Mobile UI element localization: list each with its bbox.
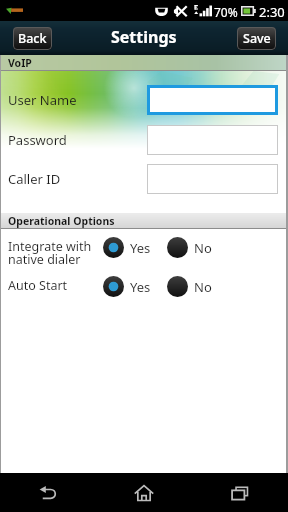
staticText: No [194, 278, 212, 296]
staticText: Save [243, 30, 271, 47]
button[interactable]: Yes [103, 276, 151, 297]
button[interactable]: Back [13, 27, 52, 50]
button[interactable]: Home [121, 473, 167, 512]
staticText: Settings [111, 26, 177, 48]
button[interactable]: No [167, 276, 212, 297]
button[interactable]: Yes [103, 237, 151, 258]
staticText: Password [8, 131, 67, 149]
button[interactable] [147, 164, 278, 194]
button[interactable] [147, 125, 278, 155]
staticText: No [194, 239, 212, 257]
staticText: 2:30 [259, 3, 285, 21]
button[interactable] [147, 85, 278, 115]
staticText: User Name [8, 91, 77, 109]
staticText: Yes [130, 278, 151, 296]
staticText: Integrate with native dialer [8, 238, 92, 267]
button[interactable]: No [167, 237, 212, 258]
button[interactable]: Recent apps [217, 473, 263, 512]
staticText: Caller ID [8, 170, 61, 188]
staticText: Operational Options [8, 214, 115, 228]
staticText: VoIP [8, 56, 32, 70]
button[interactable]: Back [25, 473, 71, 512]
button[interactable]: Save [237, 27, 276, 50]
staticText: Auto Start [8, 277, 68, 294]
staticText: 70% [214, 4, 238, 20]
staticText: Yes [130, 239, 151, 257]
staticText: Back [18, 30, 47, 47]
